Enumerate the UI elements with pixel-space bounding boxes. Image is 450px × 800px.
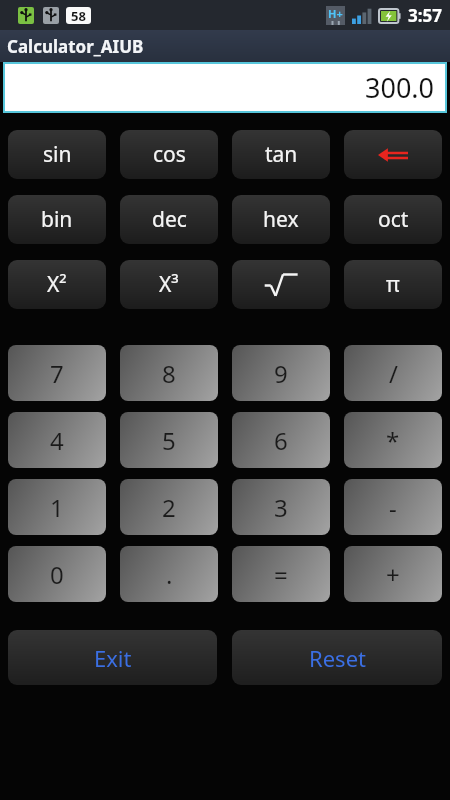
button[interactable]: 0 xyxy=(8,546,106,602)
staticText: tan xyxy=(265,140,298,169)
button[interactable]: 3 xyxy=(232,479,330,535)
button[interactable]: sin xyxy=(8,130,106,179)
staticText: H+ xyxy=(328,6,343,21)
staticText: hex xyxy=(263,205,299,234)
staticText: 5 xyxy=(162,424,176,457)
button[interactable]: * xyxy=(344,412,442,468)
button[interactable]: oct xyxy=(344,195,442,244)
button[interactable]: X² xyxy=(8,260,106,309)
staticText: 7 xyxy=(50,357,64,390)
button[interactable]: 1 xyxy=(8,479,106,535)
staticText: Exit xyxy=(94,643,132,673)
staticText: - xyxy=(389,491,397,524)
staticText: 6 xyxy=(274,424,288,457)
button[interactable]: dec xyxy=(120,195,218,244)
staticText: cos xyxy=(153,140,186,169)
staticText: Calculator_AIUB xyxy=(7,35,144,58)
button[interactable]: hex xyxy=(232,195,330,244)
button[interactable]: 9 xyxy=(232,345,330,401)
staticText: sin xyxy=(43,140,72,169)
button[interactable]: tan xyxy=(232,130,330,179)
staticText: X³ xyxy=(159,270,179,299)
button[interactable]: 4 xyxy=(8,412,106,468)
staticText: 0 xyxy=(50,558,64,591)
button[interactable]: - xyxy=(344,479,442,535)
button[interactable]: 2 xyxy=(120,479,218,535)
button[interactable]: . xyxy=(120,546,218,602)
staticText: 3 xyxy=(274,491,288,524)
staticText: * xyxy=(386,424,400,457)
button[interactable]: Exit xyxy=(8,630,217,685)
button[interactable]: 7 xyxy=(8,345,106,401)
staticText: 300.0 xyxy=(365,69,435,106)
staticText: oct xyxy=(378,205,409,234)
button[interactable]: X³ xyxy=(120,260,218,309)
button[interactable]: π xyxy=(344,260,442,309)
button[interactable]: / xyxy=(344,345,442,401)
button[interactable]: 8 xyxy=(120,345,218,401)
staticText: = xyxy=(274,558,288,591)
staticText: 3:57 xyxy=(408,4,442,27)
staticText: 1 xyxy=(50,491,64,524)
staticText: + xyxy=(386,558,400,591)
button[interactable]: bin xyxy=(8,195,106,244)
button[interactable]: 5 xyxy=(120,412,218,468)
button[interactable]: = xyxy=(232,546,330,602)
button[interactable]: Reset xyxy=(232,630,442,685)
staticText: dec xyxy=(152,205,187,234)
staticText: 9 xyxy=(274,357,288,390)
staticText: X² xyxy=(47,270,67,299)
staticText: Reset xyxy=(309,643,366,673)
button[interactable]: Backspace xyxy=(344,130,442,179)
staticText: 8 xyxy=(162,357,176,390)
button[interactable]: + xyxy=(344,546,442,602)
staticText: 2 xyxy=(162,491,176,524)
button[interactable] xyxy=(232,260,330,309)
staticText: 58 xyxy=(71,7,86,24)
button[interactable]: 6 xyxy=(232,412,330,468)
staticText: 4 xyxy=(50,424,64,457)
button[interactable]: 300.0 xyxy=(5,64,445,111)
button[interactable]: cos xyxy=(120,130,218,179)
staticText: . xyxy=(166,558,173,591)
staticText: bin xyxy=(41,205,73,234)
staticText: / xyxy=(389,357,398,390)
staticText: π xyxy=(386,270,400,299)
